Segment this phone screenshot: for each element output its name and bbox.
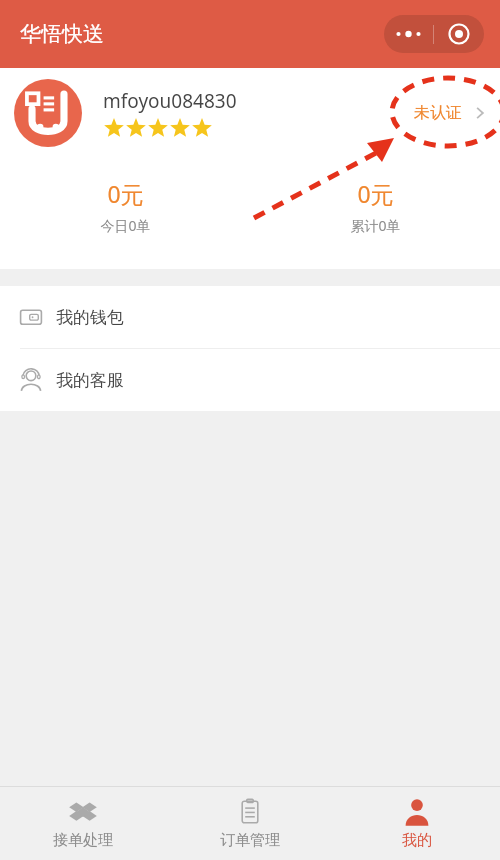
button[interactable]: mfoyou084830 — [0, 68, 500, 158]
button[interactable]: 接单处理 — [0, 787, 166, 860]
staticText: 我的 — [402, 831, 432, 850]
staticText: 华悟快送 — [20, 21, 104, 47]
button[interactable]: 我的钱包 — [0, 286, 500, 348]
button[interactable]: More options — [384, 15, 433, 53]
staticText: 接单处理 — [53, 831, 113, 850]
button[interactable]: 订单管理 — [166, 787, 333, 860]
button[interactable]: 未认证 — [414, 103, 500, 123]
staticText: 今日0单 — [100, 216, 151, 235]
staticText: 未认证 — [414, 103, 462, 123]
button[interactable]: 0元 — [0, 178, 250, 235]
button[interactable]: 我的 — [333, 787, 500, 860]
staticText: mfoyou084830 — [103, 88, 237, 114]
staticText: 我的客服 — [56, 370, 124, 391]
button[interactable]: 0元 — [250, 178, 500, 235]
button[interactable]: Record — [434, 15, 484, 53]
staticText: 我的钱包 — [56, 307, 124, 328]
staticText: 累计0单 — [350, 216, 401, 235]
staticText: 0元 — [107, 178, 144, 209]
button[interactable]: 我的客服 — [0, 349, 500, 411]
staticText: 订单管理 — [220, 831, 280, 850]
staticText: 0元 — [357, 178, 394, 209]
